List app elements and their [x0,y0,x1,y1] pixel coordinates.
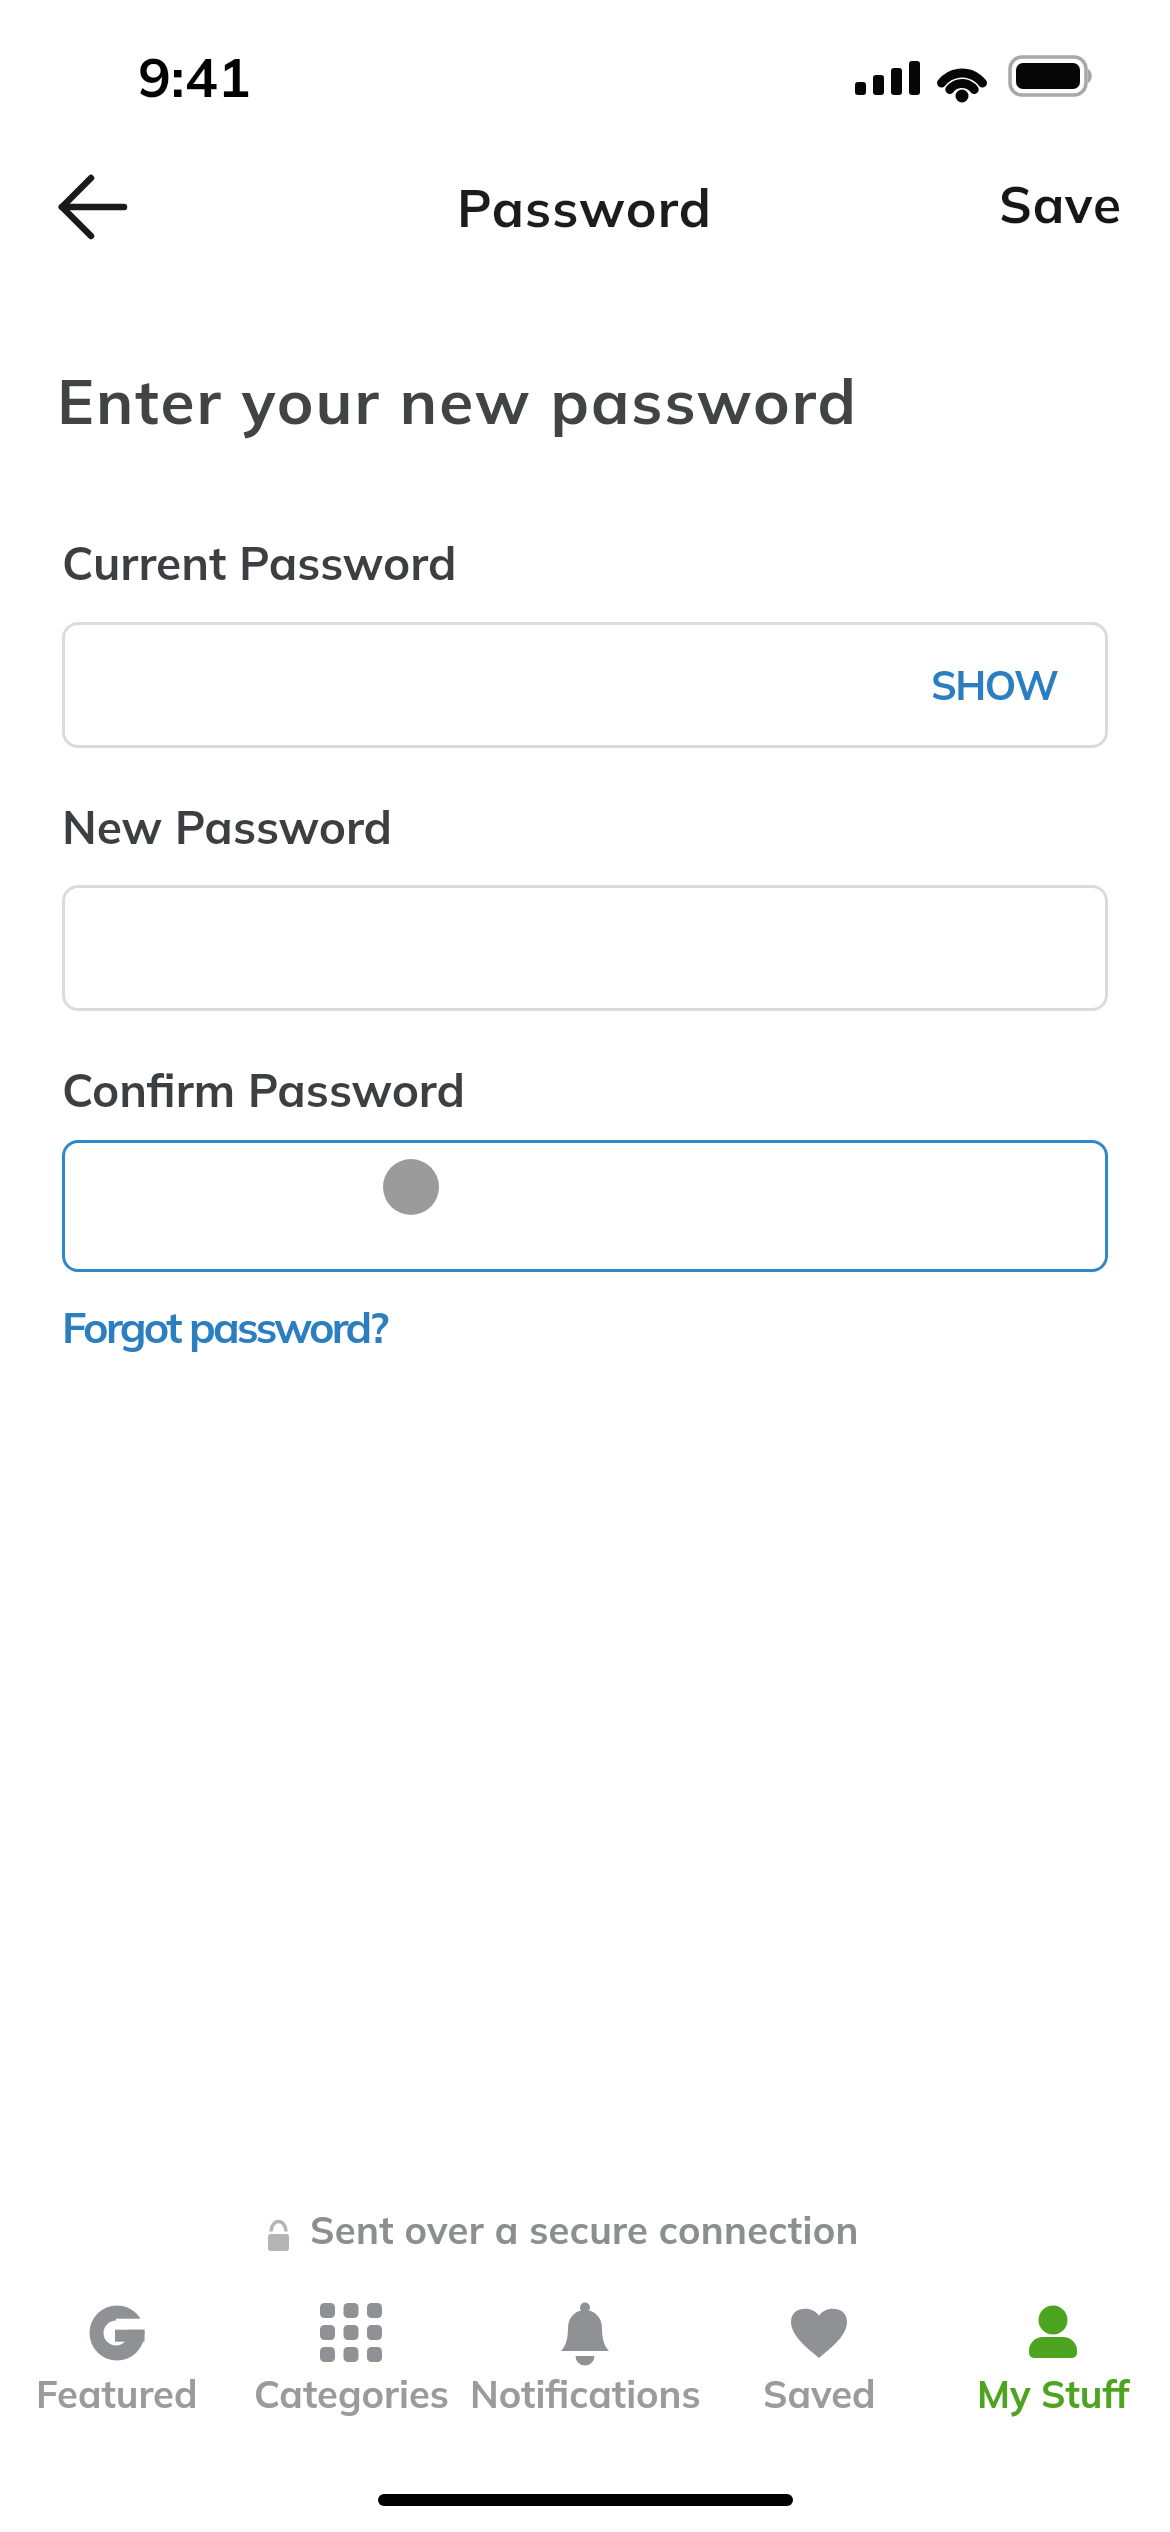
staticText: My Stuff [977,2370,1130,2418]
button[interactable]: Featured [0,2288,234,2424]
staticText: Forgot password? [62,1300,387,1354]
staticText: 9:41 [138,42,251,111]
button[interactable]: Saved [702,2288,936,2424]
staticText: Confirm Password [62,1061,466,1119]
button[interactable]: My Stuff [936,2288,1170,2424]
button[interactable]: SHOW [62,622,1108,748]
staticText: Sent over a secure connection [310,2206,859,2254]
button[interactable]: Categories [234,2288,468,2424]
staticText: New Password [62,798,393,856]
button[interactable] [36,166,148,250]
staticText: SHOW [931,660,1058,710]
staticText: Saved [763,2370,876,2418]
staticText: Categories [254,2370,449,2418]
staticText: Notifications [470,2370,701,2418]
button[interactable]: SHOW [923,652,1066,718]
button[interactable] [62,885,1108,1011]
button[interactable]: Forgot password? [56,1294,393,1360]
staticText: Password [457,175,713,240]
staticText: Save [999,172,1122,236]
button[interactable]: Save [995,168,1126,240]
staticText: Featured [36,2370,198,2418]
staticText: Enter your new password [57,362,858,440]
button[interactable] [62,1140,1108,1272]
staticText: Current Password [62,534,457,592]
button[interactable]: Notifications [468,2288,702,2424]
